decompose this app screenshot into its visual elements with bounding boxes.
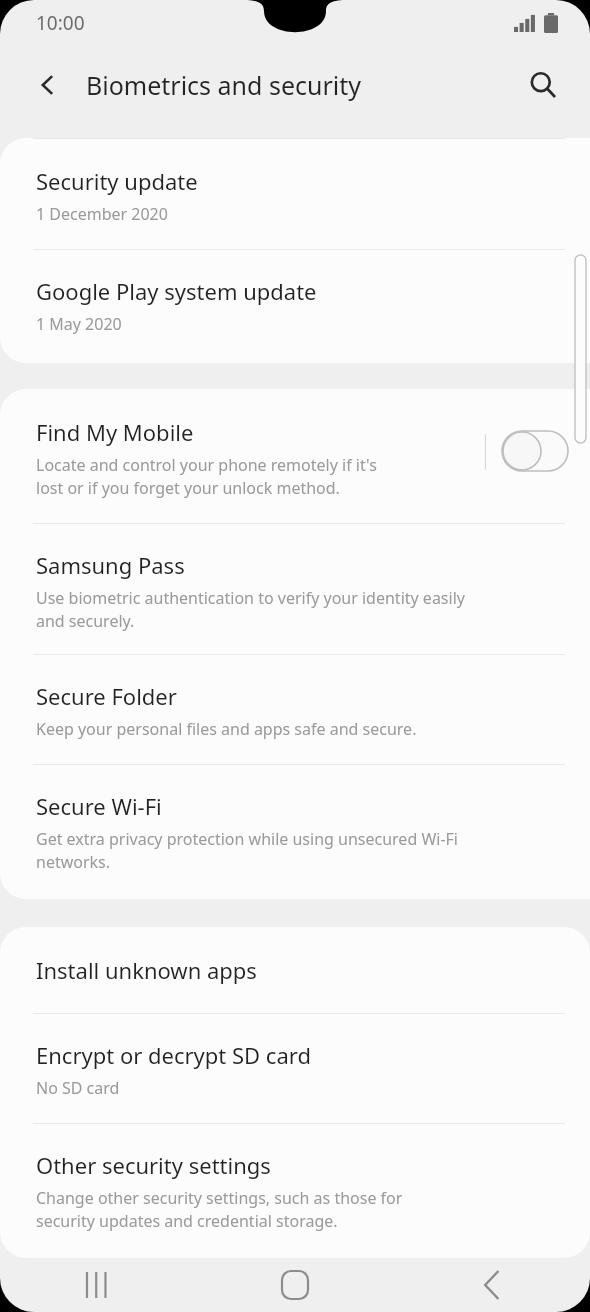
button[interactable]: Find My Mobile bbox=[0, 389, 590, 523]
button[interactable]: Back bbox=[22, 59, 74, 111]
button[interactable]: Find My Mobile toggle bbox=[502, 431, 568, 471]
staticText: Encrypt or decrypt SD card bbox=[36, 1040, 311, 1070]
staticText: Find My Mobile bbox=[36, 417, 194, 447]
staticText: 10:00 bbox=[36, 10, 85, 36]
button[interactable]: Search bbox=[516, 58, 570, 112]
staticText: Install unknown apps bbox=[36, 955, 257, 985]
staticText: No SD card bbox=[36, 1077, 120, 1099]
staticText: Google Play system update bbox=[36, 276, 317, 306]
button[interactable]: Secure Wi-Fi bbox=[0, 765, 590, 899]
staticText: Secure Folder bbox=[36, 681, 177, 711]
staticText: Get extra privacy protection while using… bbox=[36, 828, 458, 873]
button[interactable]: Security update bbox=[0, 139, 590, 249]
staticText: Other security settings bbox=[36, 1150, 271, 1180]
staticText: Change other security settings, such as … bbox=[36, 1187, 403, 1232]
button[interactable]: Secure Folder bbox=[0, 655, 590, 764]
staticText: Locate and control your phone remotely i… bbox=[36, 454, 377, 499]
staticText: Secure Wi-Fi bbox=[36, 791, 162, 821]
staticText: Use biometric authentication to verify y… bbox=[36, 587, 465, 632]
button[interactable]: Recents bbox=[0, 1258, 196, 1312]
staticText: 1 December 2020 bbox=[36, 203, 168, 225]
button[interactable]: Google Play system update bbox=[0, 250, 590, 363]
button[interactable]: Home bbox=[196, 1258, 393, 1312]
button[interactable]: Encrypt or decrypt SD card bbox=[0, 1014, 590, 1123]
button[interactable]: Other security settings bbox=[0, 1124, 590, 1258]
staticText: 1 May 2020 bbox=[36, 313, 122, 335]
staticText: Samsung Pass bbox=[36, 550, 185, 580]
staticText: Keep your personal files and apps safe a… bbox=[36, 718, 417, 740]
staticText: Biometrics and security bbox=[86, 68, 362, 102]
staticText: Security update bbox=[36, 166, 198, 196]
button[interactable]: Samsung Pass bbox=[0, 524, 590, 654]
button[interactable]: Back bbox=[393, 1258, 590, 1312]
button[interactable]: Install unknown apps bbox=[0, 927, 590, 1013]
